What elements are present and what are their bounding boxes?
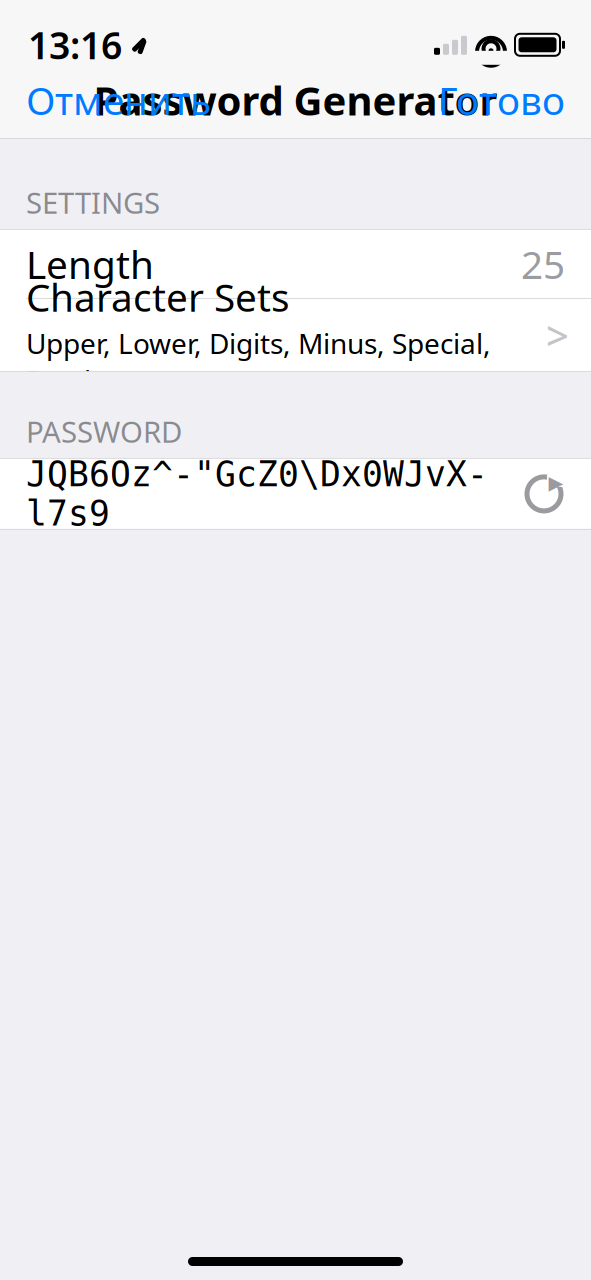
button[interactable]: Character Sets [0, 299, 591, 371]
staticText: 25 [521, 238, 565, 290]
staticText: JQB6Oz^-"GcZ0\Dx0WJvXl7s9 [26, 455, 488, 533]
staticText: > [546, 308, 569, 361]
staticText: PASSWORD [26, 412, 182, 451]
button[interactable]: Отменить [0, 62, 237, 138]
staticText: 13:16 [28, 20, 122, 70]
button[interactable]: Готово [412, 62, 591, 138]
staticText: Upper, Lower, Digits, Minus, Special, Br… [26, 324, 491, 399]
staticText: Отменить [26, 74, 211, 126]
staticText: Готово [438, 74, 565, 126]
staticText: Length [26, 238, 154, 290]
button[interactable]: Length [0, 230, 591, 298]
staticText: SETTINGS [26, 183, 160, 222]
staticText: Password Generator [93, 73, 497, 126]
staticText: ▸ [548, 465, 563, 499]
button[interactable]: Regenerate password [513, 463, 575, 525]
staticText: Character Sets [26, 271, 290, 322]
